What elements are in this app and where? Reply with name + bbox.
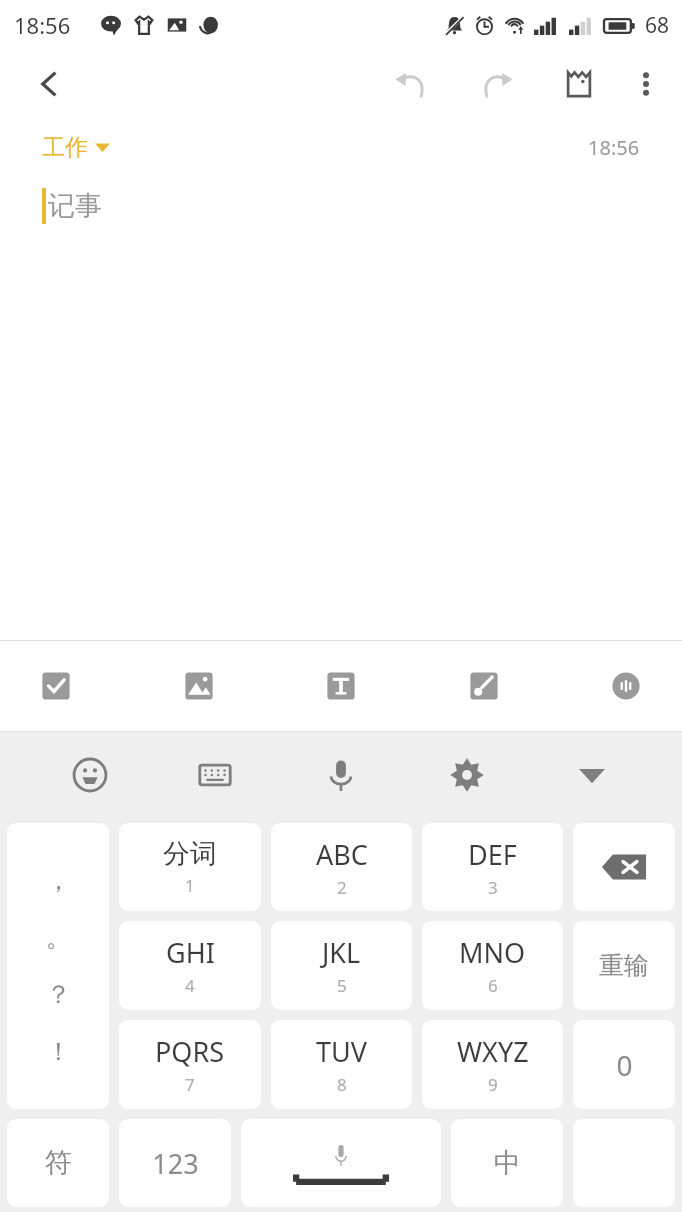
staticText: 重输 [599, 950, 649, 981]
staticText: 6 [488, 974, 498, 997]
staticText: PQRS [155, 1033, 225, 1070]
button[interactable]: ABC [271, 823, 412, 911]
button[interactable]: 记事 [0, 176, 682, 640]
staticText: 123 [152, 1145, 199, 1182]
staticText: ABC [316, 836, 368, 873]
staticText: JKL [322, 934, 361, 971]
button[interactable]: Emoji [54, 739, 126, 811]
button[interactable]: DEF [422, 823, 563, 911]
staticText: TUV [316, 1033, 367, 1070]
staticText: 符 [45, 1146, 72, 1180]
button[interactable]: MNO [422, 921, 563, 1010]
staticText: GHI [166, 934, 215, 971]
button[interactable]: Hide keyboard [556, 739, 628, 811]
button[interactable]: Redo [468, 55, 526, 113]
staticText: 2 [337, 876, 347, 899]
button[interactable]: Symbols [7, 1119, 109, 1207]
button[interactable]: Insert image [167, 654, 231, 718]
staticText: ！ [46, 1036, 71, 1067]
staticText: 9 [488, 1073, 498, 1096]
staticText: 分词 [163, 837, 217, 871]
staticText: 3 [488, 876, 498, 899]
button[interactable]: Back [26, 60, 74, 108]
button[interactable]: Draw [452, 654, 516, 718]
button[interactable]: JKL [271, 921, 412, 1010]
button[interactable]: WXYZ [422, 1020, 563, 1109]
staticText: ？ [46, 979, 71, 1010]
staticText: 18:56 [588, 134, 640, 161]
button[interactable]: Input settings [431, 739, 503, 811]
button[interactable]: 分词 [119, 823, 261, 911]
button[interactable]: Text style [309, 654, 373, 718]
button[interactable]: TUV [271, 1020, 412, 1109]
button[interactable]: Record audio [594, 654, 658, 718]
staticText: WXYZ [457, 1033, 529, 1070]
staticText: 4 [185, 974, 195, 997]
button[interactable]: Voice input [305, 739, 377, 811]
staticText: 68 [645, 11, 670, 40]
staticText: ， [46, 865, 71, 896]
button[interactable]: Chinese input mode [451, 1119, 563, 1207]
button[interactable]: Checklist [24, 654, 88, 718]
staticText: MNO [459, 934, 526, 971]
staticText: 0 [616, 1046, 633, 1084]
staticText: 工作 [42, 133, 88, 162]
staticText: 1 [185, 874, 195, 897]
button[interactable]: Keyboard layout [179, 739, 251, 811]
staticText: 5 [337, 974, 347, 997]
button[interactable]: Backspace [573, 823, 675, 911]
staticText: 7 [185, 1073, 195, 1096]
staticText: 8 [337, 1073, 347, 1096]
staticText: 。 [46, 922, 71, 953]
button[interactable]: 工作 [42, 133, 110, 162]
button[interactable]: PQRS [119, 1020, 261, 1109]
button[interactable]: Space [241, 1119, 441, 1207]
staticText: 中 [494, 1146, 521, 1180]
button[interactable]: Zero [573, 1020, 675, 1109]
button[interactable]: Notes [550, 55, 608, 113]
button[interactable]: More options [620, 58, 672, 110]
staticText: 记事 [48, 189, 102, 223]
button[interactable]: GHI [119, 921, 261, 1010]
staticText: DEF [468, 836, 517, 873]
button[interactable]: Retype [573, 921, 675, 1010]
button[interactable]: Numbers [119, 1119, 231, 1207]
button[interactable]: Undo [382, 55, 440, 113]
button[interactable]: Punctuation [7, 823, 109, 1109]
staticText: 18:56 [14, 10, 71, 40]
